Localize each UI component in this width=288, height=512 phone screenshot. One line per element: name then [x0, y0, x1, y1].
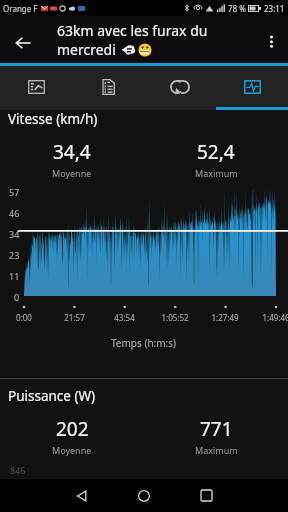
staticText: 78 %: [228, 3, 246, 14]
staticText: 21:57: [64, 312, 85, 323]
staticText: Temps (h:m:s): [111, 336, 177, 350]
staticText: 23: [9, 249, 20, 261]
staticText: 11: [9, 270, 20, 282]
button[interactable]: Recent apps: [175, 479, 237, 512]
button[interactable]: More options: [254, 16, 288, 63]
button[interactable]: Back: [0, 16, 45, 63]
staticText: 1:05:52: [161, 312, 189, 323]
staticText: 23:11: [264, 3, 285, 14]
staticText: Moyenne: [52, 444, 92, 456]
staticText: 0: [14, 291, 20, 303]
staticText: 1:49:46: [262, 312, 288, 323]
staticText: Moyenne: [52, 167, 92, 179]
button[interactable]: Home: [113, 479, 175, 512]
button[interactable]: Back: [51, 479, 113, 512]
staticText: 1:27:49: [211, 312, 239, 323]
staticText: Vitesse (km/h): [8, 110, 98, 128]
staticText: 57: [9, 186, 20, 198]
button[interactable]: Map: [0, 66, 72, 107]
staticText: Maximum: [195, 444, 238, 456]
button[interactable]: Charts: [216, 66, 288, 107]
staticText: 34,4: [53, 139, 91, 165]
button[interactable]: Details: [72, 66, 144, 107]
staticText: 202: [56, 416, 89, 442]
staticText: Orange F: [3, 3, 38, 14]
staticText: 52,4: [197, 139, 235, 165]
staticText: 846: [10, 464, 26, 476]
staticText: 43:54: [114, 312, 135, 323]
staticText: 0:00: [16, 312, 32, 323]
button[interactable]: Laps: [144, 66, 216, 107]
staticText: 771: [200, 416, 233, 442]
staticText: 63km avec les furax du: [57, 21, 208, 40]
staticText: Maximum: [195, 167, 238, 179]
staticText: 46: [9, 207, 20, 219]
staticText: 34: [9, 228, 20, 240]
staticText: mercredi: [57, 40, 120, 59]
staticText: Puissance (W): [8, 387, 96, 405]
